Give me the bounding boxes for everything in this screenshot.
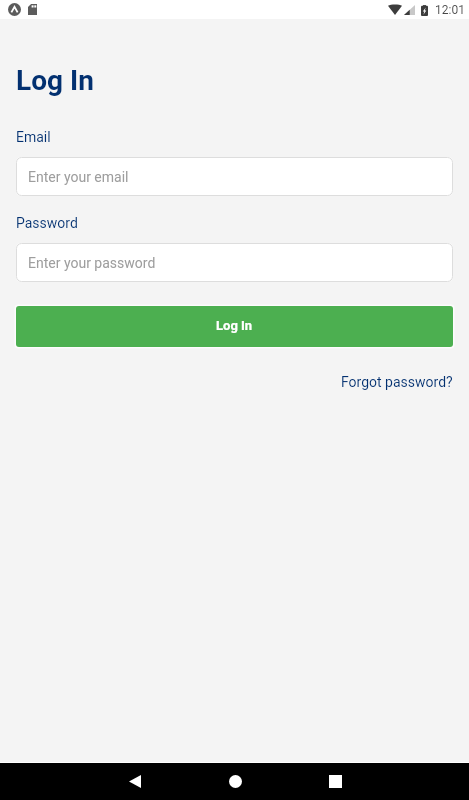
staticText: Log In: [216, 318, 253, 333]
button[interactable]: Recent apps: [307, 763, 363, 800]
staticText: Forgot password?: [341, 374, 453, 390]
button[interactable]: Log In: [16, 306, 453, 347]
staticText: Enter your password: [28, 255, 156, 271]
staticText: Password: [16, 215, 78, 231]
button[interactable]: Enter your email: [16, 157, 453, 196]
staticText: Log In: [16, 64, 94, 97]
staticText: 12:01: [435, 3, 465, 17]
staticText: Enter your email: [28, 169, 129, 185]
button[interactable]: Forgot password?: [341, 374, 453, 390]
staticText: Email: [16, 129, 51, 145]
button[interactable]: Home: [207, 763, 263, 800]
button[interactable]: Enter your password: [16, 243, 453, 282]
button[interactable]: Back: [107, 763, 163, 800]
